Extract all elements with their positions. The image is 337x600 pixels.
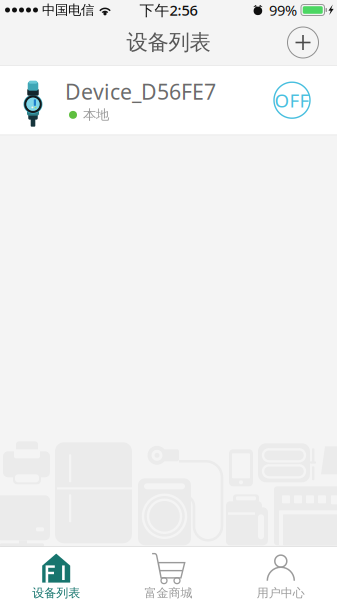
staticText: 用户中心 bbox=[257, 586, 305, 600]
staticText: 本地 bbox=[83, 107, 109, 123]
staticText: 设备列表 bbox=[32, 586, 80, 600]
button[interactable]: Toggle device off bbox=[270, 78, 314, 122]
button[interactable]: 设备列表 bbox=[0, 547, 112, 600]
staticText: 中国电信 bbox=[42, 2, 94, 18]
staticText: OFF bbox=[274, 88, 309, 113]
staticText: 富金商城 bbox=[144, 586, 192, 600]
staticText: Device_D56FE7 bbox=[65, 77, 216, 106]
button[interactable]: 用户中心 bbox=[225, 547, 337, 600]
button[interactable]: Add device bbox=[281, 20, 325, 64]
staticText: 下午2:56 bbox=[139, 0, 197, 20]
staticText: 设备列表 bbox=[126, 29, 210, 56]
staticText: 99% bbox=[269, 0, 297, 20]
button[interactable]: 富金商城 bbox=[112, 547, 225, 600]
